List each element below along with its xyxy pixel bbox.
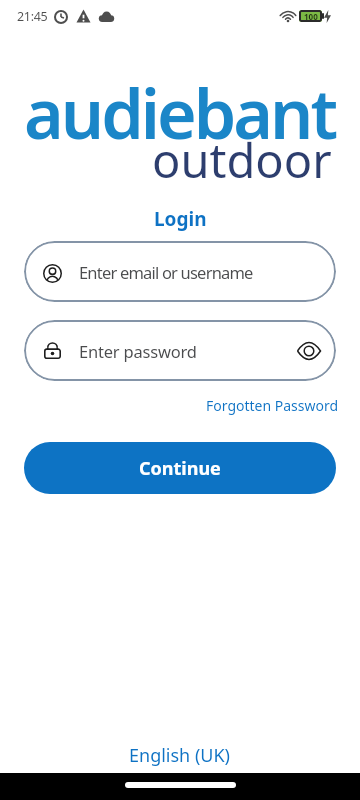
- button[interactable]: Enter password: [24, 320, 336, 381]
- staticText: 100: [304, 11, 318, 22]
- staticText: audiebant: [24, 66, 336, 159]
- button[interactable]: Continue: [24, 442, 336, 494]
- staticText: outdoor: [152, 128, 332, 192]
- staticText: Enter email or username: [79, 261, 253, 283]
- button[interactable]: Forgotten Password: [206, 396, 339, 415]
- staticText: Continue: [139, 456, 221, 481]
- staticText: Enter password: [79, 340, 197, 362]
- button[interactable]: English (UK): [129, 743, 231, 768]
- staticText: 21:45: [17, 8, 48, 25]
- button[interactable]: Enter email or username: [24, 241, 336, 302]
- staticText: Login: [154, 206, 207, 232]
